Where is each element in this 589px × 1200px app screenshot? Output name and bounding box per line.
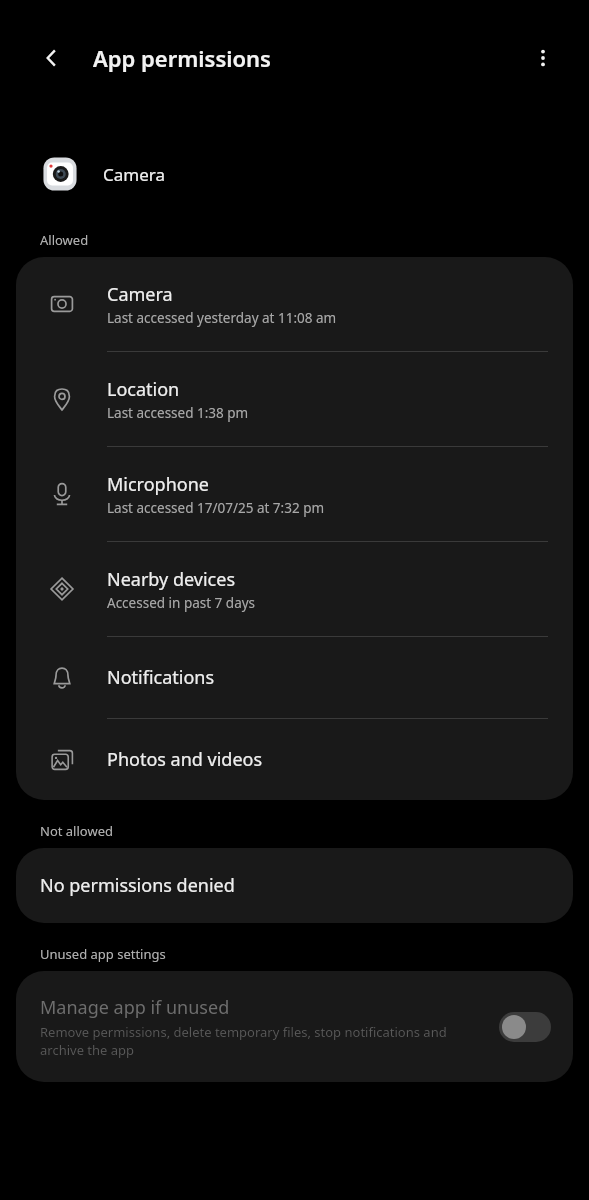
button[interactable]: Microphone [16,447,573,541]
staticText: Microphone [107,472,209,497]
staticText: Last accessed 17/07/25 at 7:32 pm [107,499,325,517]
staticText: Manage app if unused [40,995,230,1020]
staticText: Location [107,377,180,402]
button[interactable]: Manage app if unused [16,971,573,1082]
staticText: Notifications [107,665,215,690]
staticText: Camera [107,282,173,307]
staticText: Remove permissions, delete temporary fil… [40,1023,487,1059]
button[interactable]: No permissions denied [16,848,573,923]
staticText: App permissions [93,43,271,73]
button[interactable]: Camera [16,257,573,351]
button[interactable]: Nearby devices [16,542,573,636]
button[interactable]: Back [28,34,76,82]
staticText: Accessed in past 7 days [107,594,256,612]
staticText: Allowed [40,231,89,249]
button[interactable]: More options [519,34,567,82]
staticText: Not allowed [40,822,113,840]
staticText: Photos and videos [107,747,263,772]
staticText: Last accessed 1:38 pm [107,404,249,422]
staticText: Camera [103,163,165,186]
button[interactable]: Location [16,352,573,446]
button[interactable]: Notifications [16,637,573,718]
button[interactable]: Camera [0,152,589,196]
staticText: No permissions denied [40,873,235,898]
staticText: Last accessed yesterday at 11:08 am [107,309,337,327]
button[interactable]: Photos and videos [16,719,573,800]
button[interactable]: Manage app if unused toggle [499,1012,551,1042]
staticText: Unused app settings [40,945,166,963]
staticText: Nearby devices [107,567,235,592]
